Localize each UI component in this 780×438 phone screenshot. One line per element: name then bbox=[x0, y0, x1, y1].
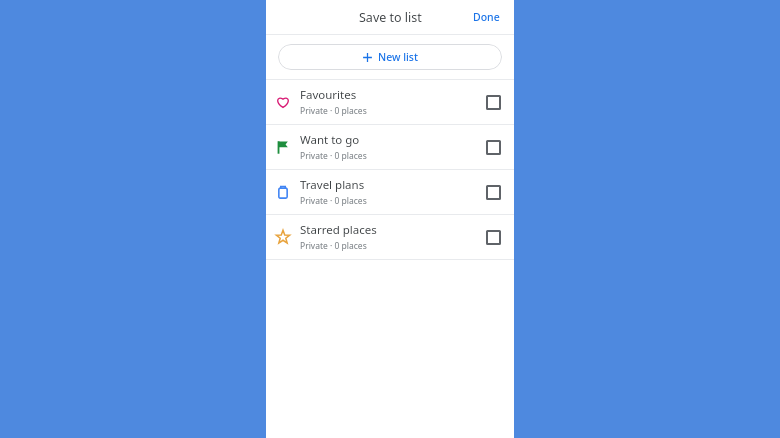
staticText: Private · 0 places bbox=[300, 240, 367, 252]
button[interactable]: Done bbox=[467, 6, 506, 28]
button[interactable]: Select Favourites bbox=[472, 80, 514, 124]
staticText: Starred places bbox=[300, 222, 377, 238]
staticText: Want to go bbox=[300, 132, 360, 148]
button[interactable]: Select Want to go bbox=[472, 125, 514, 169]
button[interactable]: Select Starred places bbox=[472, 215, 514, 259]
button[interactable]: Favourites bbox=[266, 80, 514, 124]
button[interactable]: Want to go bbox=[266, 125, 514, 169]
staticText: Favourites bbox=[300, 87, 357, 103]
staticText: Private · 0 places bbox=[300, 195, 367, 207]
staticText: New list bbox=[378, 50, 418, 64]
staticText: Travel plans bbox=[300, 177, 365, 193]
staticText: Private · 0 places bbox=[300, 105, 367, 117]
button[interactable]: Travel plans bbox=[266, 170, 514, 214]
button[interactable]: Select Travel plans bbox=[472, 170, 514, 214]
staticText: Private · 0 places bbox=[300, 150, 367, 162]
staticText: Done bbox=[473, 10, 500, 24]
button[interactable]: New list bbox=[278, 44, 502, 70]
staticText: Save to list bbox=[359, 9, 422, 26]
button[interactable]: Starred places bbox=[266, 215, 514, 259]
